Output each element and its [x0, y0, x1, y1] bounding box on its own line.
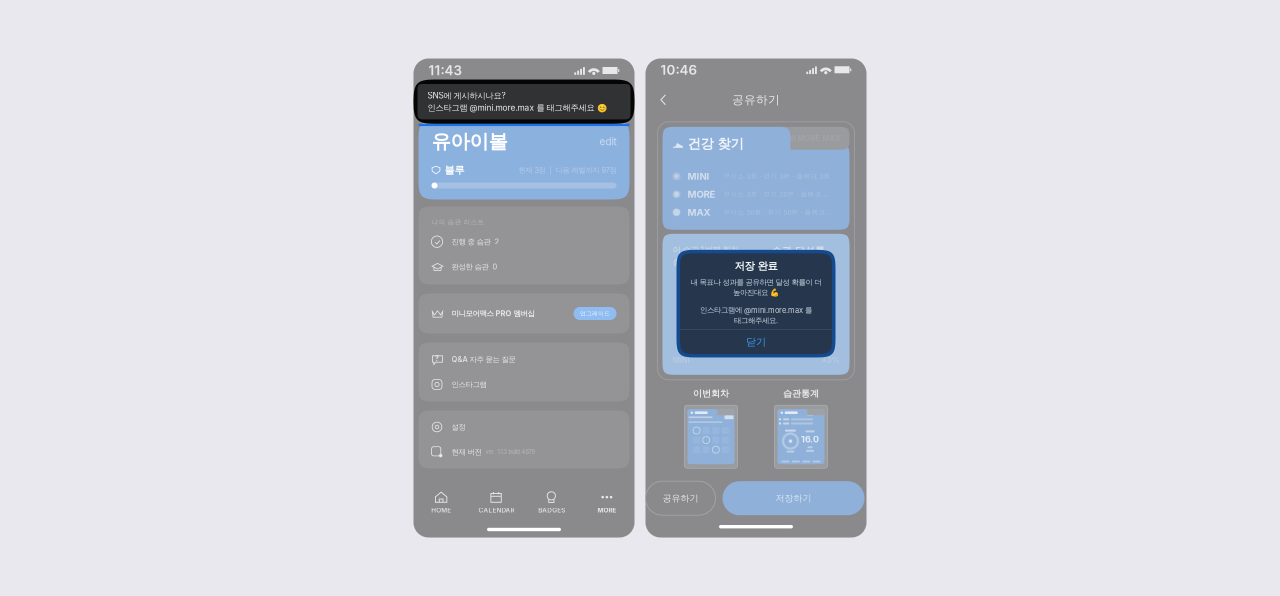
staticText: 인스타그램에 @mini.more.max 를	[700, 305, 812, 315]
staticText: 나의 습관 리스트	[431, 218, 484, 226]
staticText: 닫기	[746, 336, 766, 348]
staticText: 10:46	[660, 62, 697, 78]
button[interactable]: ?	[418, 347, 629, 372]
staticText: 무산소 3회 · 걷기 3분 · 플랭크 3회	[723, 172, 830, 180]
staticText: ?	[435, 354, 439, 363]
staticText: 무산소 3회 · 걷기 20분 · 플랭크 10회	[723, 190, 831, 198]
staticText: CALENDAR	[478, 506, 514, 514]
staticText: 습관통계	[783, 388, 819, 399]
staticText: 공유하기	[662, 492, 698, 504]
button[interactable]: 닫기	[680, 330, 832, 354]
staticText: ver. 1.1.3 build 4679	[485, 449, 534, 455]
button[interactable]: 저장하기	[722, 481, 864, 515]
staticText: 저장 완료	[734, 259, 777, 272]
staticText: 0	[492, 262, 497, 271]
staticText: +3%	[767, 261, 791, 273]
staticText: MORE	[687, 188, 715, 200]
staticText: 미니모어맥스 PRO 멤버십	[451, 309, 534, 318]
button[interactable]: 현재 버전	[418, 439, 629, 464]
staticText: 설정	[451, 422, 465, 432]
button[interactable]: 인스타그램	[418, 372, 629, 397]
staticText: 총 18일 도전 중	[672, 257, 727, 268]
button[interactable]: 미니모어맥스 PRO 멤버십	[418, 301, 629, 326]
staticText: BADGES	[538, 506, 565, 514]
staticText: 16.0	[801, 434, 819, 445]
staticText: 저장하기	[775, 492, 811, 504]
button[interactable]: Back	[653, 89, 673, 111]
button[interactable]	[684, 405, 737, 468]
staticText: 현재 3점 | 다음 레벨까지 97점	[518, 166, 616, 175]
staticText: 내 목표나 성과를 공유하면 달성 확률이 더	[690, 277, 821, 287]
staticText: 블루	[444, 164, 464, 176]
staticText: MAX	[687, 206, 710, 218]
button[interactable]: 16.0	[774, 405, 827, 468]
staticText: 완성한 습관	[451, 262, 488, 271]
staticText: +3%	[821, 355, 839, 365]
button[interactable]: 설정	[418, 414, 629, 439]
staticText: MINI	[687, 170, 709, 182]
staticText: 11:43	[428, 62, 461, 78]
staticText: SNS에 게시하시나요?	[427, 90, 505, 101]
staticText: 인스타그램 @mini.more.max 를 태그해주세요 😊	[427, 102, 606, 113]
staticText: 이 습관 1번째 회차	[672, 245, 738, 255]
staticText: 습관 달성률	[772, 245, 825, 257]
button[interactable]: 진행 중 습관	[418, 229, 629, 254]
staticText: 진행 중 습관	[451, 237, 490, 246]
button[interactable]: BADGES	[524, 487, 579, 518]
button[interactable]: MORE	[579, 487, 634, 518]
staticText: 인스타그램	[451, 380, 486, 389]
staticText: 현재 버전	[451, 447, 481, 457]
button[interactable]: 공유하기	[645, 481, 715, 515]
staticText: 이번회차	[693, 388, 729, 399]
button[interactable]: HOME	[413, 487, 469, 518]
staticText: Q&A 자주 묻는 질문	[451, 355, 515, 364]
staticText: edit	[599, 136, 616, 148]
staticText: HOME	[431, 506, 451, 514]
button[interactable]: CALENDAR	[469, 487, 524, 518]
staticText: 2	[494, 237, 499, 246]
staticText: 건강 찾기	[687, 135, 743, 152]
staticText: 업그레이드	[580, 310, 610, 317]
button[interactable]: edit	[599, 136, 616, 148]
staticText: 태그해주세요.	[734, 316, 778, 325]
staticText: MINI MORE MAX	[778, 134, 841, 143]
staticText: MORE	[597, 506, 616, 514]
staticText: 무산소 50회 · 걷기 50분 · 플랭크 50회	[723, 208, 831, 216]
staticText: 공유하기	[732, 92, 780, 107]
button[interactable]: 완성한 습관	[418, 254, 629, 279]
staticText: MINI	[672, 355, 689, 365]
staticText: 높아진대요 💪	[733, 288, 779, 297]
staticText: 유아이볼	[431, 129, 507, 154]
